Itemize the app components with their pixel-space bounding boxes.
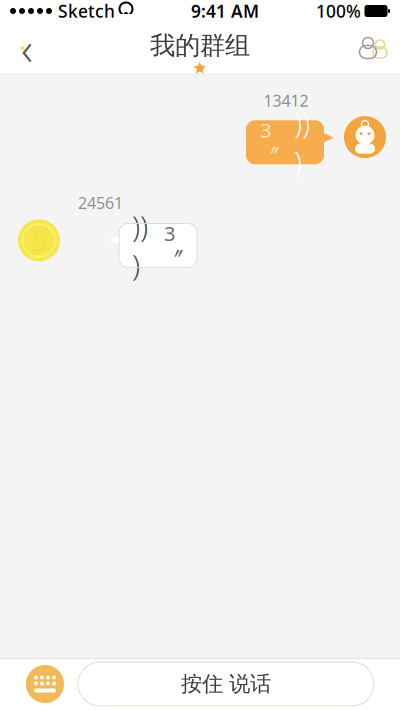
staticText: 24561 — [78, 192, 123, 213]
staticText: ))) — [294, 103, 310, 181]
staticText: ))) — [132, 206, 148, 284]
button[interactable]: Keyboard — [26, 665, 64, 703]
staticText: ★ — [192, 58, 208, 78]
staticText: 按住 说话 — [181, 671, 271, 697]
staticText: S — [31, 222, 46, 259]
button[interactable]: Back — [0, 26, 54, 70]
staticText: 3〞 — [164, 220, 184, 271]
staticText: Sketch — [58, 0, 115, 22]
button[interactable]: 按住 说话 — [78, 662, 374, 706]
staticText: ▶ — [320, 126, 333, 146]
button[interactable]: Members — [346, 26, 400, 70]
staticText: 13412 — [263, 90, 308, 111]
staticText: 我的群组 — [150, 30, 250, 61]
staticText: 100% — [316, 0, 361, 22]
staticText: 3〞 — [260, 117, 280, 168]
staticText: ◀ — [109, 229, 122, 248]
staticText: 9:41 AM — [191, 0, 259, 22]
staticText: ‹ — [21, 18, 33, 78]
